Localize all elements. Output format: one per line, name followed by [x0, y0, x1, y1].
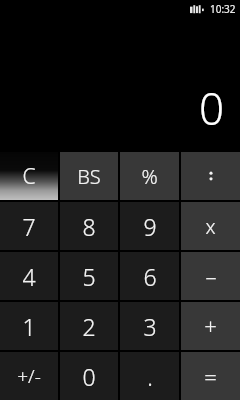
- staticText: 1: [22, 311, 36, 342]
- button[interactable]: 3: [120, 302, 179, 350]
- staticText: 5: [82, 261, 96, 292]
- button[interactable]: x: [181, 202, 240, 250]
- staticText: 3: [143, 311, 157, 342]
- staticText: C: [22, 162, 36, 191]
- button[interactable]: BS: [60, 152, 118, 200]
- button[interactable]: .: [120, 352, 179, 400]
- button[interactable]: More options: [181, 152, 240, 200]
- button[interactable]: 9: [120, 202, 179, 250]
- button[interactable]: 2: [60, 302, 118, 350]
- button[interactable]: 8: [60, 202, 118, 250]
- button[interactable]: =: [181, 352, 240, 400]
- staticText: +: [204, 311, 217, 341]
- staticText: 4: [22, 261, 36, 292]
- staticText: BS: [77, 163, 101, 190]
- staticText: =: [204, 361, 217, 391]
- staticText: .: [147, 361, 153, 392]
- staticText: 9: [143, 211, 157, 242]
- button[interactable]: C: [0, 152, 58, 200]
- staticText: x: [205, 213, 216, 240]
- button[interactable]: 6: [120, 252, 179, 300]
- staticText: %: [141, 163, 158, 190]
- staticText: –: [205, 261, 217, 291]
- button[interactable]: 5: [60, 252, 118, 300]
- staticText: +/-: [17, 363, 41, 389]
- staticText: 8: [82, 211, 96, 242]
- button[interactable]: 0: [60, 352, 118, 400]
- staticText: 6: [143, 261, 157, 292]
- staticText: 0: [82, 361, 96, 392]
- staticText: 7: [22, 211, 36, 242]
- button[interactable]: 1: [0, 302, 58, 350]
- button[interactable]: –: [181, 252, 240, 300]
- button[interactable]: +: [181, 302, 240, 350]
- staticText: 0: [198, 78, 224, 138]
- button[interactable]: 4: [0, 252, 58, 300]
- staticText: 10:32: [210, 2, 236, 16]
- button[interactable]: +/-: [0, 352, 58, 400]
- button[interactable]: %: [120, 152, 179, 200]
- staticText: 2: [82, 311, 96, 342]
- button[interactable]: 7: [0, 202, 58, 250]
